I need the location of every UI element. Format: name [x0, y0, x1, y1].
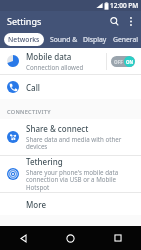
staticText: ON — [126, 59, 134, 65]
staticText: 12:00 PM — [110, 1, 139, 10]
button[interactable]: Home — [47, 226, 94, 250]
staticText: Display — [83, 35, 107, 44]
button[interactable]: Mobile data toggle, on — [111, 56, 135, 67]
staticText: General — [113, 35, 139, 44]
button[interactable]: Display — [79, 30, 110, 48]
staticText: Share data and media with other devices — [26, 135, 136, 151]
staticText: Mobile data — [26, 51, 72, 62]
button[interactable]: Mobile data — [0, 48, 141, 74]
button[interactable]: Networks — [4, 33, 44, 46]
staticText: Sound & — [50, 35, 78, 44]
staticText: Connection allowed — [26, 63, 84, 71]
button[interactable]: Back — [0, 226, 47, 250]
staticText: Share your phone's mobile data connectio… — [26, 168, 138, 192]
staticText: Tethering — [26, 156, 63, 167]
staticText: CONNECTIVITY — [7, 108, 51, 116]
button[interactable]: Search — [105, 12, 123, 30]
button[interactable]: Recent apps — [94, 226, 141, 250]
staticText: Call — [26, 82, 40, 93]
staticText: Networks — [8, 35, 40, 44]
staticText: More — [26, 199, 47, 210]
button[interactable]: Tethering — [0, 156, 141, 192]
staticText: Share & connect — [26, 123, 89, 134]
button[interactable]: Sound & — [49, 30, 79, 48]
button[interactable]: Call — [0, 75, 141, 99]
button[interactable]: General — [110, 30, 141, 48]
button[interactable]: Share & connect — [0, 119, 141, 155]
button[interactable]: More — [0, 193, 141, 215]
button[interactable]: More options — [123, 13, 139, 29]
staticText: OFF — [114, 59, 123, 65]
staticText: Settings — [7, 15, 42, 27]
